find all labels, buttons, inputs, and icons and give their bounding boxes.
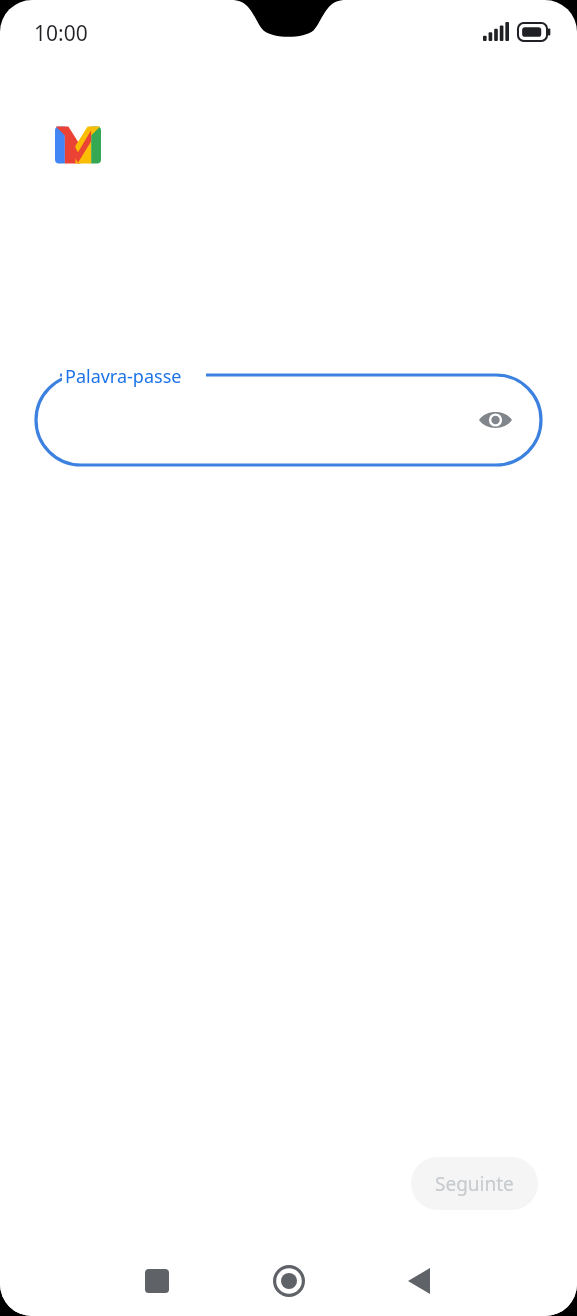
button[interactable]: Voltar — [390, 1252, 448, 1310]
button[interactable]: Palavra-passe — [36, 364, 541, 466]
staticText: Palavra-passe — [65, 364, 182, 389]
button[interactable]: Seguinte — [411, 1157, 538, 1210]
button[interactable]: Recentes — [128, 1252, 186, 1310]
staticText: Seguinte — [435, 1171, 514, 1197]
button[interactable]: Início — [260, 1252, 318, 1310]
staticText: 10:00 — [34, 19, 88, 48]
button[interactable]: Gmail — [40, 107, 115, 182]
button[interactable]: Mostrar palavra-passe — [475, 400, 515, 440]
